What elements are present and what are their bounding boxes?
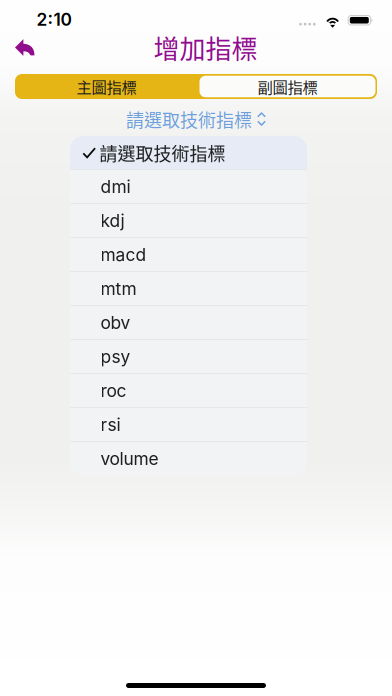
button[interactable]: dmi [70,170,307,203]
button[interactable]: rsi [70,408,307,441]
button[interactable]: psy [70,340,307,373]
button[interactable]: roc [70,374,307,407]
staticText: 增加指標 [153,29,257,66]
button[interactable]: 請選取技術指標 [70,136,307,169]
staticText: macd [100,244,146,265]
staticText: volume [100,448,158,469]
button[interactable]: macd [70,238,307,271]
button[interactable]: volume [70,442,307,475]
staticText: roc [100,380,126,401]
button[interactable]: 副圖指標 [198,74,377,99]
staticText: 2:10 [36,9,71,30]
staticText: 請選取技術指標 [126,106,252,132]
button[interactable]: kdj [70,204,307,237]
staticText: rsi [100,414,120,435]
staticText: dmi [100,176,130,197]
staticText: 副圖指標 [257,75,317,98]
button[interactable]: 主圖指標 [15,74,198,99]
staticText: kdj [100,210,124,231]
staticText: 請選取技術指標 [99,140,225,166]
button[interactable]: obv [70,306,307,339]
button[interactable]: Back [0,32,47,63]
staticText: obv [100,312,130,333]
button[interactable]: 請選取技術指標 [126,104,266,134]
staticText: 主圖指標 [76,75,136,98]
staticText: psy [100,346,130,367]
button[interactable]: mtm [70,272,307,305]
staticText: mtm [100,278,136,299]
